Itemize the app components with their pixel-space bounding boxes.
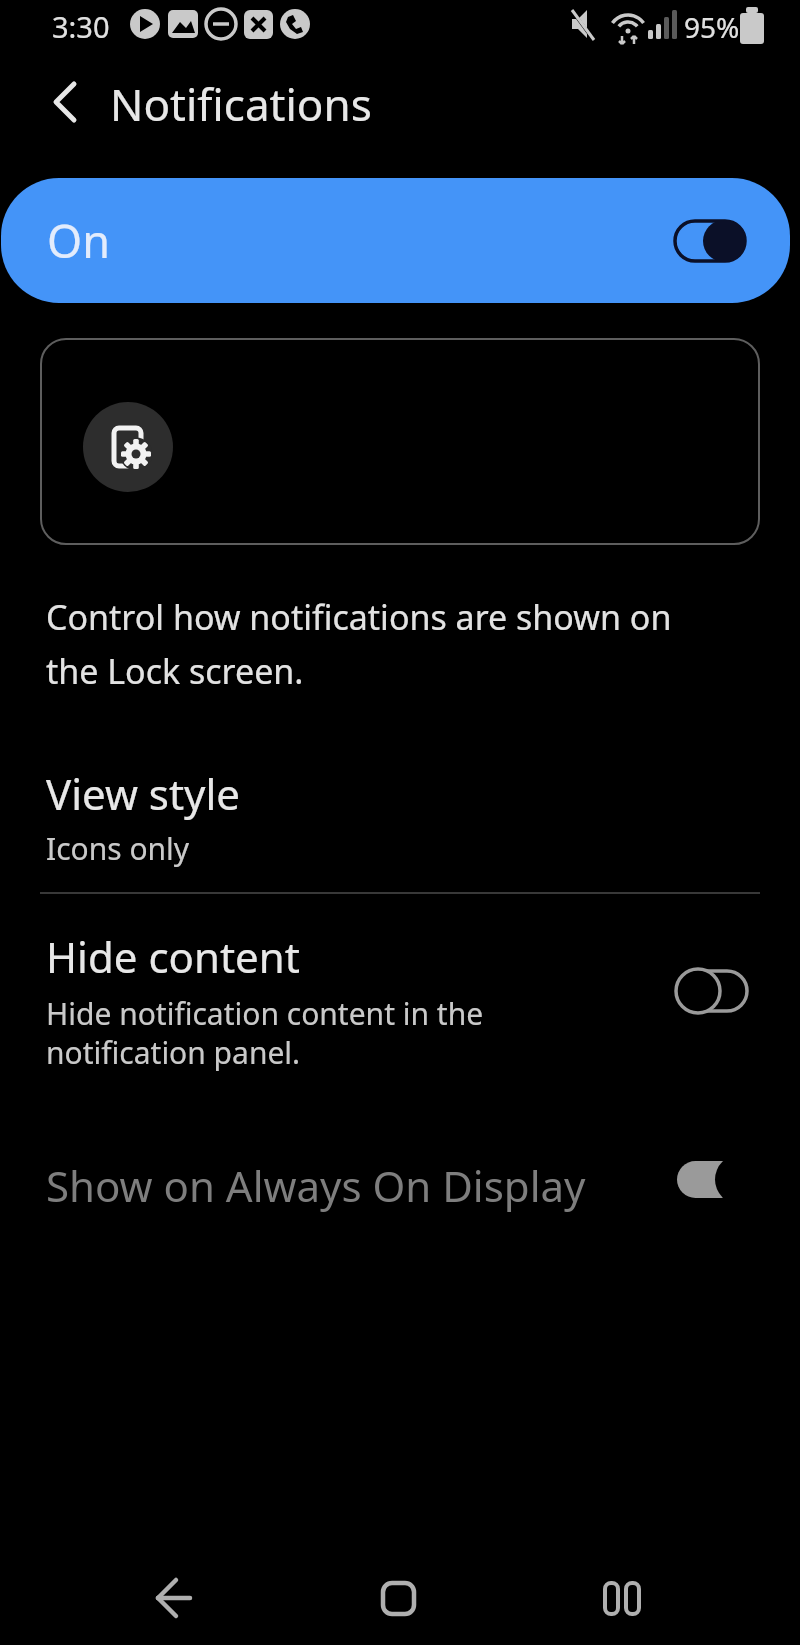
button[interactable]: View style [0,755,800,880]
staticText: Hide content [46,928,300,985]
staticText: On [47,210,110,271]
button[interactable]: Show on Always On Display [0,1130,800,1230]
staticText: View style [46,765,241,822]
button[interactable] [590,1565,656,1631]
staticText: Control how notifications are shown on t… [46,594,672,694]
button[interactable] [365,1565,431,1631]
staticText: 95% [684,8,740,46]
staticText: Notifications [110,74,372,134]
staticText: Hide notification content in the notific… [46,993,484,1072]
staticText: Icons only [46,828,190,869]
staticText: Show on Always On Display [46,1157,586,1214]
staticText: 3:30 [52,7,110,46]
button[interactable] [140,1565,206,1631]
button[interactable] [40,338,760,545]
button[interactable]: On [1,178,790,303]
button[interactable] [36,74,92,130]
button[interactable]: Hide content [0,915,800,1075]
